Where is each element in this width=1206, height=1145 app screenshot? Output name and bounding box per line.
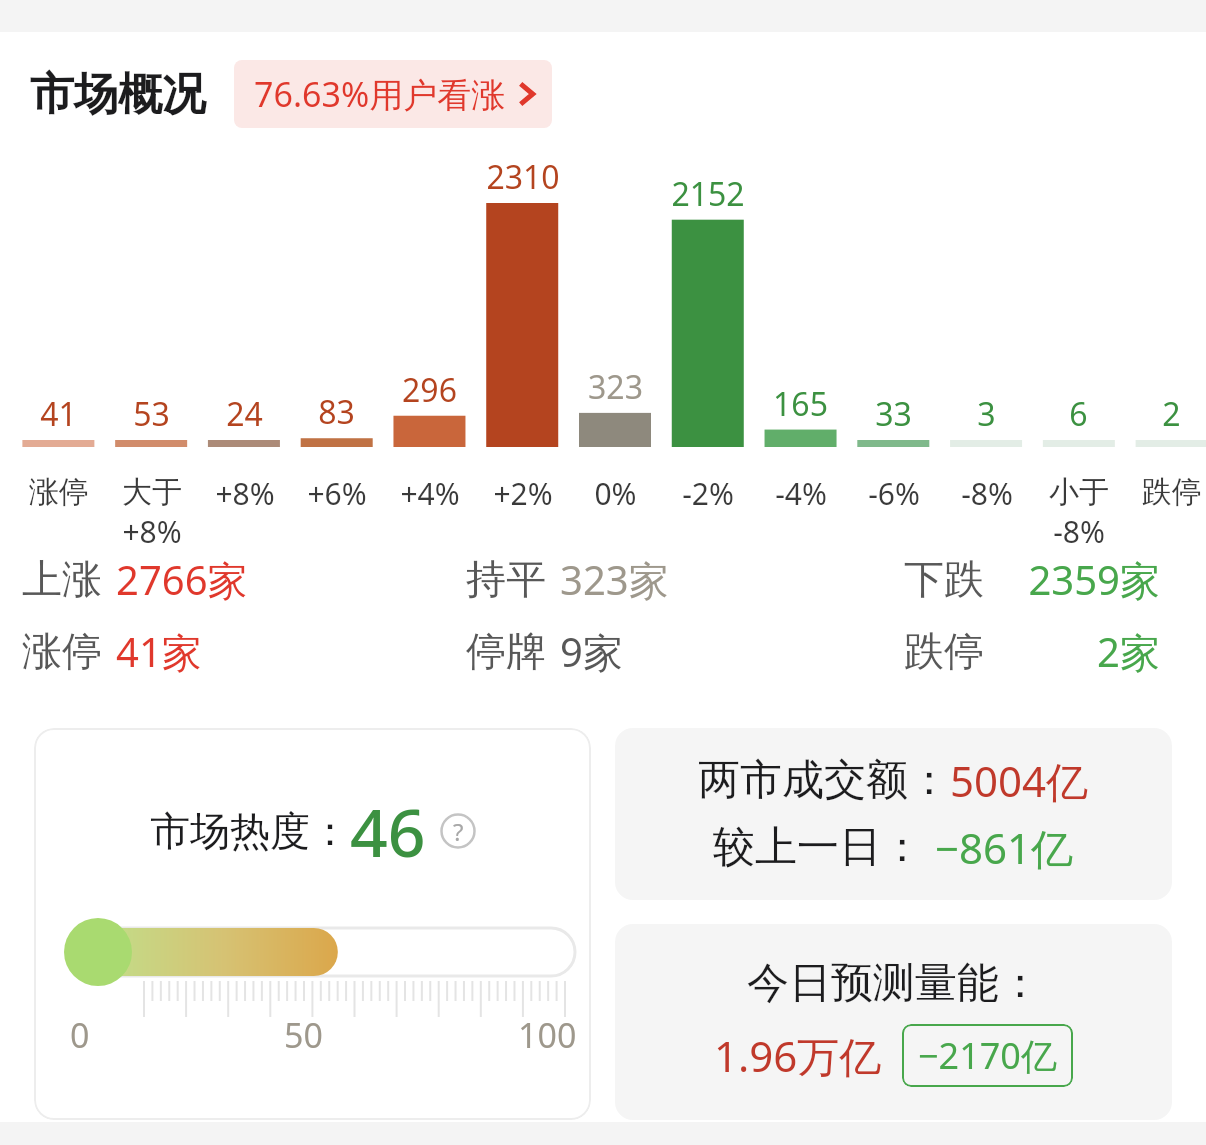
staticText: 0 [70,1012,90,1058]
staticText: 33 [875,392,912,436]
staticText: 较上一日： [713,821,923,874]
staticText: ? [453,815,464,848]
staticText: 小于 [1049,473,1109,511]
staticText: 6 [1069,392,1088,436]
staticText: 2359家 [984,552,1160,607]
staticText: 持平 [466,554,546,604]
staticText: 53 [133,392,170,436]
staticText: -8% [961,473,1013,514]
staticText: +8% [215,473,275,514]
staticText: 涨停 [29,473,89,511]
staticText: 83 [318,390,355,434]
staticText: 41 [40,392,77,436]
staticText: +6% [307,473,367,514]
other: 查看详情 [518,80,536,108]
staticText: 2家 [984,624,1160,679]
staticText: +8% [122,511,182,552]
staticText: −2170亿 [918,1031,1057,1080]
staticText: +2% [493,473,553,514]
staticText: 323家 [560,552,669,607]
button[interactable]: 今日预测量能： [615,924,1172,1120]
staticText: 1.96万亿 [714,1027,882,1084]
staticText: 165 [773,382,828,426]
button[interactable]: 76.63%用户看涨 [234,60,552,128]
staticText: 停牌 [466,626,546,676]
staticText: 323 [588,365,643,409]
staticText: -8% [1053,511,1105,552]
button[interactable]: 热度说明 [440,813,476,849]
staticText: -4% [775,473,827,514]
staticText: 大于 [122,473,182,511]
staticText: 76.63%用户看涨 [254,71,506,117]
button[interactable]: 两市成交额： [615,728,1172,900]
staticText: -6% [868,473,920,514]
staticText: 0% [594,473,637,514]
staticText: 跌停 [904,626,984,676]
staticText: +4% [400,473,460,514]
staticText: 41家 [116,624,202,679]
staticText: 296 [402,368,457,412]
staticText: 2152 [671,172,745,216]
button[interactable]: 市场热度： [34,728,591,1120]
staticText: 跌停 [1142,473,1202,511]
staticText: 46 [350,786,426,876]
staticText: 下跌 [904,554,984,604]
staticText: 今日预测量能： [747,957,1041,1010]
staticText: 2766家 [116,552,248,607]
staticText: 100 [518,1012,577,1058]
staticText: −861亿 [935,819,1074,876]
staticText: 9家 [560,624,623,679]
staticText: -2% [682,473,734,514]
staticText: 市场热度： [150,806,350,856]
staticText: 涨停 [22,626,102,676]
staticText: 市场概况 [30,67,206,122]
staticText: 5004亿 [950,752,1089,809]
staticText: 2 [1162,392,1181,436]
staticText: 24 [226,392,263,436]
staticText: 50 [284,1012,323,1058]
staticText: 两市成交额： [698,754,950,807]
staticText: 2310 [486,155,560,199]
staticText: 上涨 [22,554,102,604]
staticText: 3 [977,392,996,436]
